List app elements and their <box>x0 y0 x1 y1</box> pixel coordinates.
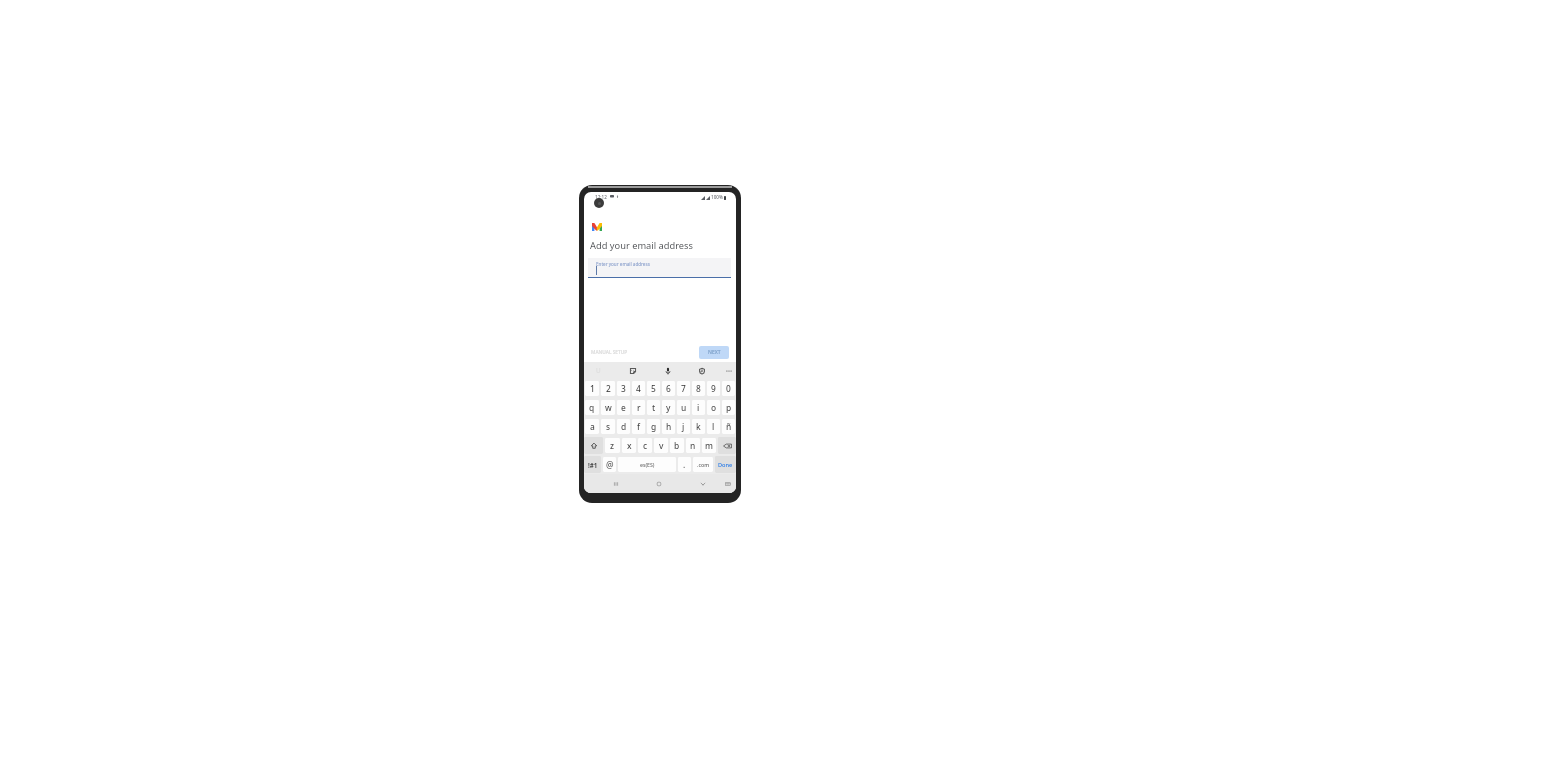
button[interactable]: b <box>670 438 684 453</box>
button[interactable]: Translate <box>682 362 721 379</box>
button[interactable]: 8 <box>692 381 705 396</box>
button[interactable]: o <box>707 400 720 415</box>
button[interactable]: n <box>686 438 700 453</box>
button[interactable]: Home <box>650 474 668 493</box>
button[interactable]: 4 <box>632 381 645 396</box>
staticText: p <box>726 402 732 413</box>
staticText: j <box>682 421 685 432</box>
button[interactable]: MANUAL SETUP <box>589 346 630 359</box>
button[interactable]: Done <box>715 456 736 473</box>
button[interactable]: Voice input <box>653 362 682 379</box>
button[interactable]: ñ <box>722 419 735 434</box>
staticText: .com <box>697 461 710 468</box>
button[interactable]: Stickers <box>613 362 653 379</box>
button[interactable]: g <box>647 419 660 434</box>
button[interactable]: Enter your email address <box>588 258 731 278</box>
button[interactable]: x <box>622 438 636 453</box>
button[interactable]: c <box>638 438 652 453</box>
staticText: d <box>621 421 627 432</box>
staticText: NEXT <box>708 349 721 356</box>
button[interactable]: Backspace <box>718 437 736 454</box>
staticText: @ <box>606 459 614 470</box>
button[interactable]: Switch keyboard <box>720 474 735 493</box>
staticText: i <box>697 402 700 413</box>
button[interactable]: 5 <box>647 381 660 396</box>
staticText: q <box>589 402 595 413</box>
button[interactable]: 9 <box>707 381 720 396</box>
staticText: es(ES) <box>640 461 655 468</box>
staticText: a <box>590 421 595 432</box>
button[interactable]: z <box>605 438 620 453</box>
staticText: o <box>711 402 717 413</box>
button[interactable]: 6 <box>662 381 675 396</box>
staticText: 100% <box>711 194 723 200</box>
button[interactable]: 7 <box>677 381 690 396</box>
button[interactable]: m <box>702 438 716 453</box>
staticText: h <box>666 421 672 432</box>
staticText: U <box>596 366 601 375</box>
staticText: !#1 <box>588 461 598 469</box>
button[interactable]: s <box>601 419 615 434</box>
staticText: s <box>606 421 611 432</box>
button[interactable]: . <box>678 457 691 472</box>
staticText: 12:12 <box>595 194 607 200</box>
staticText: 0 <box>726 383 731 394</box>
button[interactable]: d <box>617 419 630 434</box>
button[interactable]: k <box>692 419 705 434</box>
button[interactable]: e <box>617 400 630 415</box>
button[interactable]: t <box>647 400 660 415</box>
staticText: 2 <box>606 383 611 394</box>
button[interactable]: Shift <box>584 437 603 454</box>
button[interactable]: q <box>585 400 599 415</box>
button[interactable]: u <box>677 400 690 415</box>
button[interactable]: es(ES) <box>618 457 676 472</box>
staticText: x <box>627 440 632 451</box>
button[interactable]: @ <box>603 457 616 472</box>
staticText: v <box>659 440 664 451</box>
staticText: 4 <box>636 383 641 394</box>
button[interactable]: h <box>662 419 675 434</box>
staticText: y <box>666 402 671 413</box>
staticText: g <box>651 421 657 432</box>
staticText: b <box>674 440 680 451</box>
button[interactable]: v <box>654 438 668 453</box>
staticText: 5 <box>651 383 656 394</box>
button[interactable]: Recents <box>607 474 625 493</box>
staticText: 9 <box>711 383 716 394</box>
staticText: k <box>696 421 701 432</box>
button[interactable]: 0 <box>722 381 735 396</box>
button[interactable]: 1 <box>585 381 599 396</box>
staticText: ñ <box>726 421 732 432</box>
staticText: 3 <box>621 383 626 394</box>
staticText: m <box>705 440 713 451</box>
staticText: Done <box>718 461 733 469</box>
button[interactable]: l <box>707 419 720 434</box>
staticText: z <box>610 440 615 451</box>
button[interactable]: y <box>662 400 675 415</box>
staticText: w <box>605 402 612 413</box>
button[interactable]: p <box>722 400 735 415</box>
staticText: 8 <box>696 383 701 394</box>
button[interactable]: 2 <box>601 381 615 396</box>
button[interactable]: r <box>632 400 645 415</box>
button[interactable]: !#1 <box>584 456 601 473</box>
button[interactable]: i <box>692 400 705 415</box>
staticText: l <box>712 421 715 432</box>
staticText: e <box>621 402 626 413</box>
staticText: r <box>637 402 641 413</box>
button[interactable]: NEXT <box>699 346 729 359</box>
staticText: c <box>643 440 648 451</box>
button[interactable]: w <box>601 400 615 415</box>
button[interactable]: Hide keyboard <box>694 474 712 493</box>
button[interactable]: More options <box>721 362 736 379</box>
staticText: MANUAL SETUP <box>591 349 628 356</box>
button[interactable]: f <box>632 419 645 434</box>
button[interactable]: j <box>677 419 690 434</box>
button[interactable]: 3 <box>617 381 630 396</box>
button[interactable]: .com <box>693 457 713 472</box>
staticText: t <box>652 402 656 413</box>
staticText: 7 <box>681 383 686 394</box>
staticText: Enter your email address <box>596 261 650 267</box>
button[interactable]: a <box>585 419 599 434</box>
